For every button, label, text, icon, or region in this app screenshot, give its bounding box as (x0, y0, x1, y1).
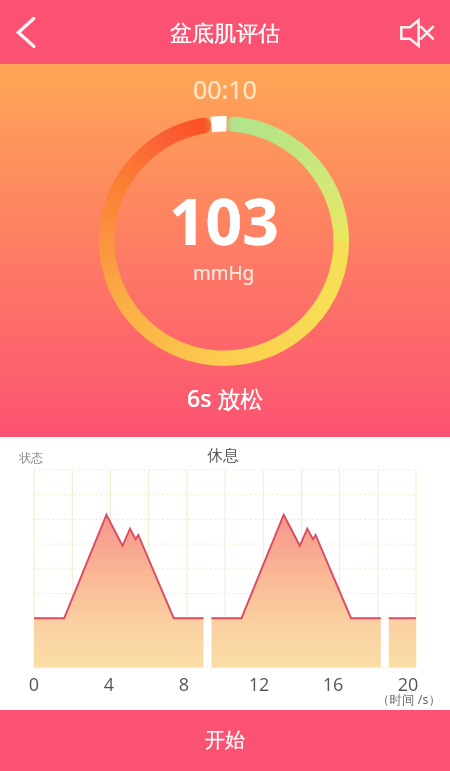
staticText: 20 (393, 672, 423, 697)
staticText: 8 (169, 672, 199, 697)
staticText: （时间 /s） (377, 691, 441, 708)
staticText: 4 (94, 672, 124, 697)
staticText: 开始 (205, 728, 245, 753)
staticText: 状态 (19, 450, 43, 465)
staticText: 00:10 (193, 72, 257, 106)
button[interactable]: Mute (394, 0, 450, 64)
staticText: 16 (318, 672, 348, 697)
staticText: 103 (169, 177, 279, 264)
staticText: 0 (19, 672, 49, 697)
button[interactable]: Back (0, 0, 54, 64)
button[interactable]: 开始 (0, 710, 450, 771)
staticText: 6s 放松 (187, 382, 264, 413)
staticText: 休息 (207, 446, 239, 466)
staticText: 盆底肌评估 (170, 20, 280, 48)
staticText: 12 (244, 672, 274, 697)
staticText: mmHg (193, 260, 255, 286)
